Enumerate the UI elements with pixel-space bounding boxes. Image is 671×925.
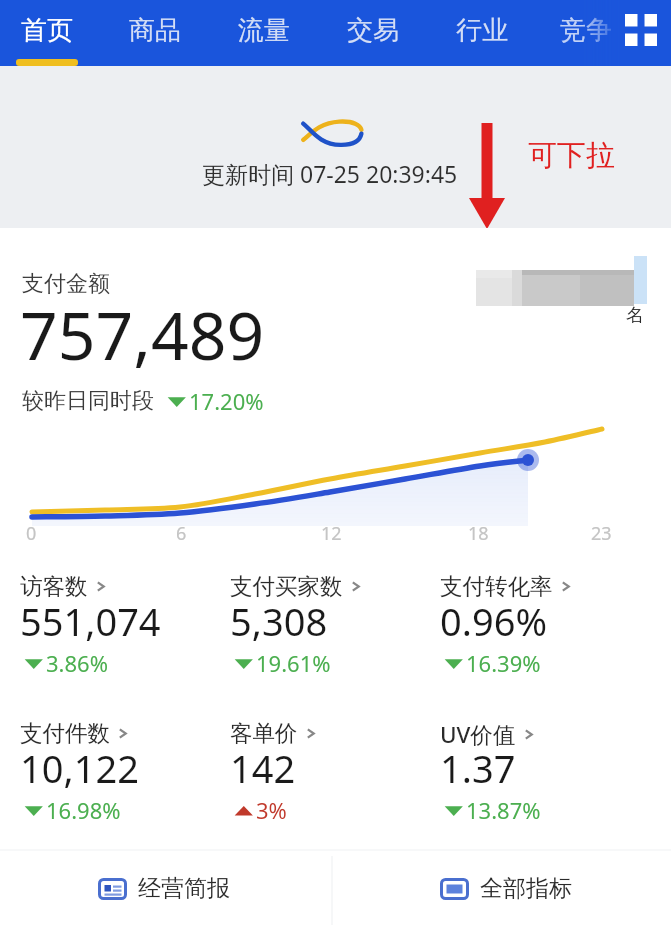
staticText: 12 xyxy=(321,521,342,546)
staticText: 5,308 xyxy=(230,595,328,647)
staticText: 首页 xyxy=(21,14,73,47)
staticText: 551,074 xyxy=(20,595,161,647)
staticText: 1.37 xyxy=(440,742,516,794)
button[interactable]: 客单价 xyxy=(230,721,430,833)
button[interactable]: 交易 xyxy=(333,0,413,66)
staticText: 支付金额 xyxy=(22,270,110,298)
staticText: 13.87% xyxy=(466,795,541,825)
button[interactable]: 访客数 xyxy=(20,574,220,686)
button[interactable]: 商品 xyxy=(115,0,195,66)
button[interactable]: 首页 xyxy=(7,0,87,66)
staticText: 16.98% xyxy=(46,795,121,825)
staticText: 名 xyxy=(626,304,644,327)
staticText: 支付买家数 xyxy=(230,572,343,600)
staticText: 3.86% xyxy=(46,648,108,678)
staticText: 10,122 xyxy=(20,742,139,794)
staticText: 3% xyxy=(256,795,287,825)
staticText: 19.61% xyxy=(256,648,331,678)
button[interactable]: 全部指标 xyxy=(333,851,671,925)
button[interactable]: Grid menu xyxy=(621,10,661,50)
button[interactable]: 行业 xyxy=(442,0,522,66)
staticText: 竞争 xyxy=(560,14,612,47)
button[interactable]: 流量 xyxy=(224,0,304,66)
staticText: 客单价 xyxy=(230,719,298,747)
staticText: 6 xyxy=(176,521,187,546)
staticText: 支付件数 xyxy=(20,719,110,747)
staticText: 可下拉 xyxy=(528,137,615,174)
button[interactable]: 支付转化率 xyxy=(440,574,640,686)
staticText: 0 xyxy=(26,521,37,546)
staticText: 142 xyxy=(230,742,296,794)
staticText: 交易 xyxy=(347,14,399,47)
staticText: 23 xyxy=(591,521,612,546)
button[interactable]: 支付件数 xyxy=(20,721,220,833)
staticText: 流量 xyxy=(238,14,290,47)
staticText: 较昨日同时段 xyxy=(22,387,154,415)
staticText: UV价值 xyxy=(440,719,516,750)
staticText: 行业 xyxy=(456,14,508,47)
button[interactable]: 支付买家数 xyxy=(230,574,430,686)
staticText: 17.20% xyxy=(189,386,264,416)
staticText: 访客数 xyxy=(20,572,88,600)
staticText: 支付转化率 xyxy=(440,572,553,600)
staticText: 757,489 xyxy=(20,289,265,379)
staticText: 0.96% xyxy=(440,595,547,647)
button[interactable]: 经营简报 xyxy=(2,851,333,925)
staticText: 16.39% xyxy=(466,648,541,678)
staticText: 经营简报 xyxy=(138,874,230,903)
button[interactable]: 竞争 xyxy=(546,0,626,66)
staticText: 更新时间 07-25 20:39:45 xyxy=(202,158,458,189)
staticText: 18 xyxy=(468,521,489,546)
staticText: 全部指标 xyxy=(480,874,572,903)
button[interactable]: UV价值 xyxy=(440,721,640,833)
staticText: 商品 xyxy=(129,14,181,47)
